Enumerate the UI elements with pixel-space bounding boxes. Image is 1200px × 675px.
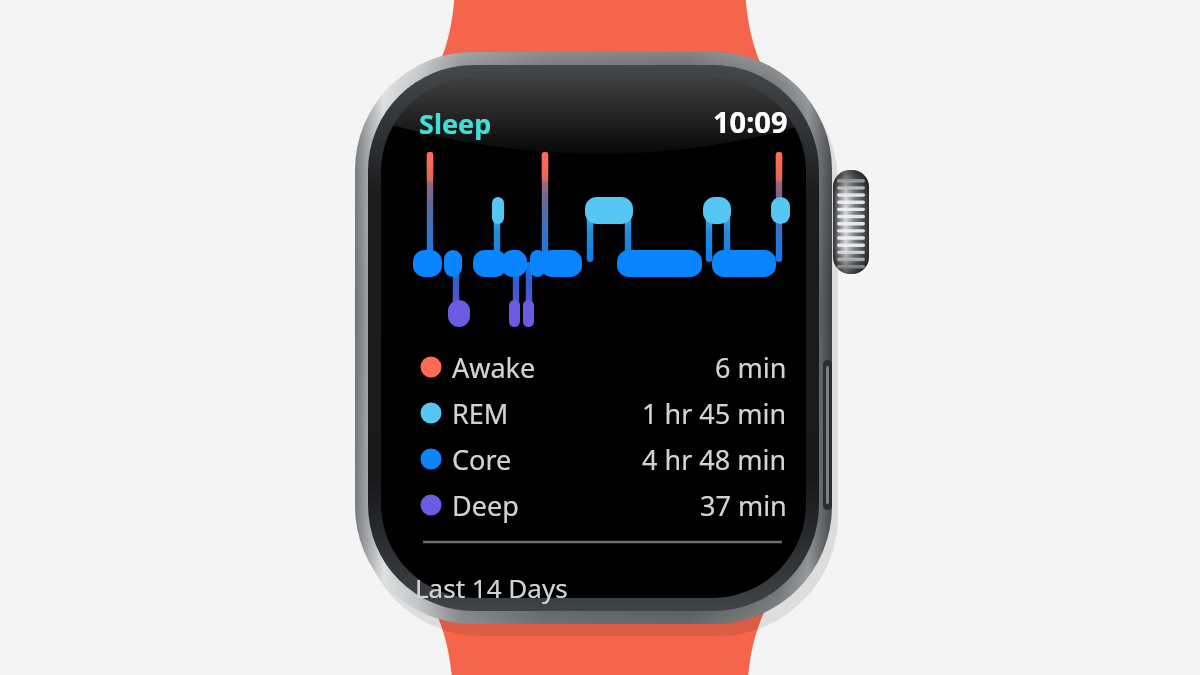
button[interactable]: Apple Watch Sleep app	[0, 0, 1200, 675]
